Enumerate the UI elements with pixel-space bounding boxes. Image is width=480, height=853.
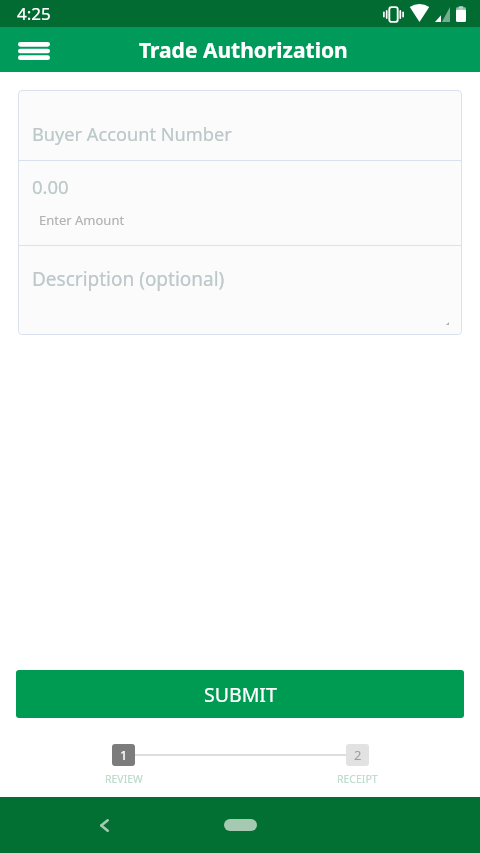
staticText: 0.00	[32, 174, 69, 199]
staticText: REVIEW	[105, 772, 143, 786]
button[interactable]: 2	[346, 744, 369, 766]
button[interactable]: Description (optional)	[18, 246, 462, 335]
button[interactable]: Back	[80, 801, 128, 849]
staticText: RECEIPT	[337, 772, 378, 786]
staticText: Trade Authorization	[139, 36, 348, 65]
staticText: SUBMIT	[204, 681, 277, 708]
button[interactable]: Open navigation menu	[0, 27, 68, 72]
button[interactable]: 0.00	[18, 161, 462, 245]
button[interactable]: Home	[224, 819, 257, 831]
staticText: Description (optional)	[32, 266, 225, 292]
staticText: 2	[354, 746, 362, 764]
button[interactable]: Buyer Account Number	[18, 90, 462, 160]
staticText: Enter Amount	[39, 211, 125, 229]
button[interactable]: SUBMIT	[16, 670, 464, 718]
staticText: 4:25	[17, 2, 51, 25]
button[interactable]: 1	[112, 744, 135, 766]
staticText: 1	[120, 746, 128, 764]
staticText: Buyer Account Number	[32, 122, 232, 147]
